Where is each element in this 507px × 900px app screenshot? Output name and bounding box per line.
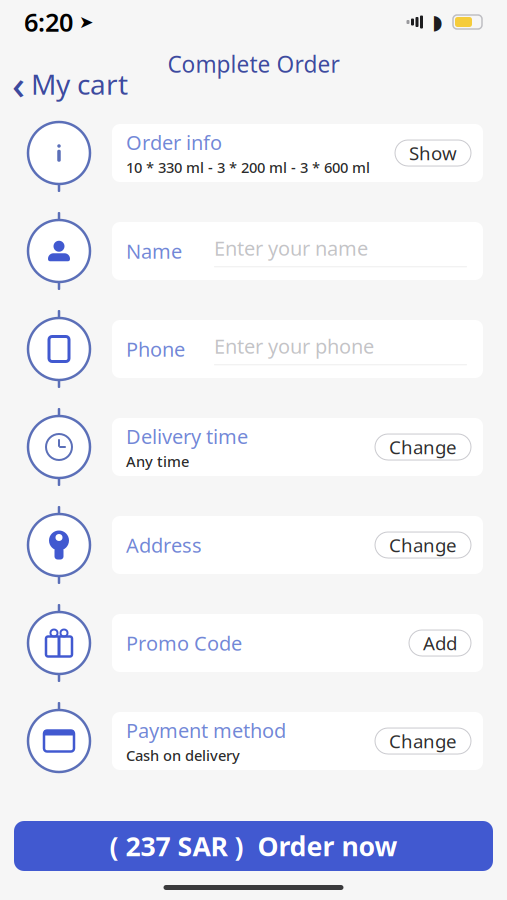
staticText: ‹: [12, 57, 25, 110]
staticText: Change: [389, 435, 457, 459]
staticText: Change: [389, 729, 457, 753]
staticText: Complete Order: [167, 49, 339, 79]
button[interactable]: ( 237 SAR ) Order now: [14, 821, 493, 871]
button[interactable]: Add: [409, 630, 471, 656]
button[interactable]: Change: [375, 434, 471, 460]
staticText: Name: [126, 238, 182, 264]
staticText: ➤: [79, 12, 94, 32]
staticText: ( 237 SAR ) Order now: [109, 828, 397, 864]
button[interactable]: Payment method: [112, 712, 483, 770]
button[interactable]: Order info: [112, 124, 483, 182]
button[interactable]: Name: [112, 222, 483, 280]
staticText: ◗: [432, 11, 443, 33]
staticText: Address: [126, 532, 202, 558]
button[interactable]: Promo Code: [112, 614, 483, 672]
staticText: Payment method: [126, 717, 286, 744]
staticText: Change: [389, 533, 457, 557]
button[interactable]: Address: [112, 516, 483, 574]
staticText: Enter your phone: [214, 333, 374, 359]
staticText: Phone: [126, 336, 185, 362]
staticText: My cart: [31, 65, 128, 103]
button[interactable]: Phone: [112, 320, 483, 378]
button[interactable]: Delivery time: [112, 418, 483, 476]
staticText: Promo Code: [126, 630, 242, 656]
staticText: Any time: [126, 451, 189, 471]
button[interactable]: Show: [395, 140, 471, 166]
button[interactable]: Change: [375, 728, 471, 754]
button[interactable]: Change: [375, 532, 471, 558]
staticText: Add: [423, 631, 457, 655]
staticText: 6:20: [24, 5, 73, 39]
button[interactable]: ‹: [0, 64, 140, 104]
staticText: Show: [409, 141, 457, 165]
staticText: Enter your name: [214, 235, 368, 261]
staticText: Cash on delivery: [126, 745, 240, 765]
staticText: Order info: [126, 129, 222, 156]
staticText: 10 * 330 ml - 3 * 200 ml - 3 * 600 ml: [126, 157, 370, 177]
staticText: Delivery time: [126, 423, 248, 450]
